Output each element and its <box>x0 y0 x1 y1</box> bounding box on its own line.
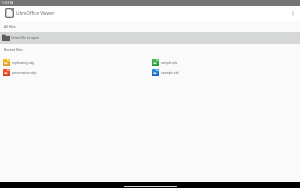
button[interactable]: example.odt <box>152 67 298 77</box>
staticText: All files <box>4 24 16 29</box>
staticText: presentation.odp <box>12 71 37 75</box>
staticText: LibreOffice Viewer <box>16 10 55 16</box>
staticText: Select file to open <box>11 35 40 40</box>
button[interactable]: sample.ods <box>152 57 298 67</box>
staticText: mydrawing.odg <box>12 61 35 65</box>
button[interactable]: presentation.odp <box>3 67 149 77</box>
button[interactable]: More options <box>286 6 300 21</box>
button[interactable]: Select file to open <box>0 32 300 44</box>
staticText: sample.ods <box>161 61 178 65</box>
button[interactable]: mydrawing.odg <box>3 57 149 67</box>
staticText: Recent files <box>4 47 23 52</box>
staticText: 1:03 <box>2 1 10 5</box>
staticText: example.odt <box>161 71 179 75</box>
